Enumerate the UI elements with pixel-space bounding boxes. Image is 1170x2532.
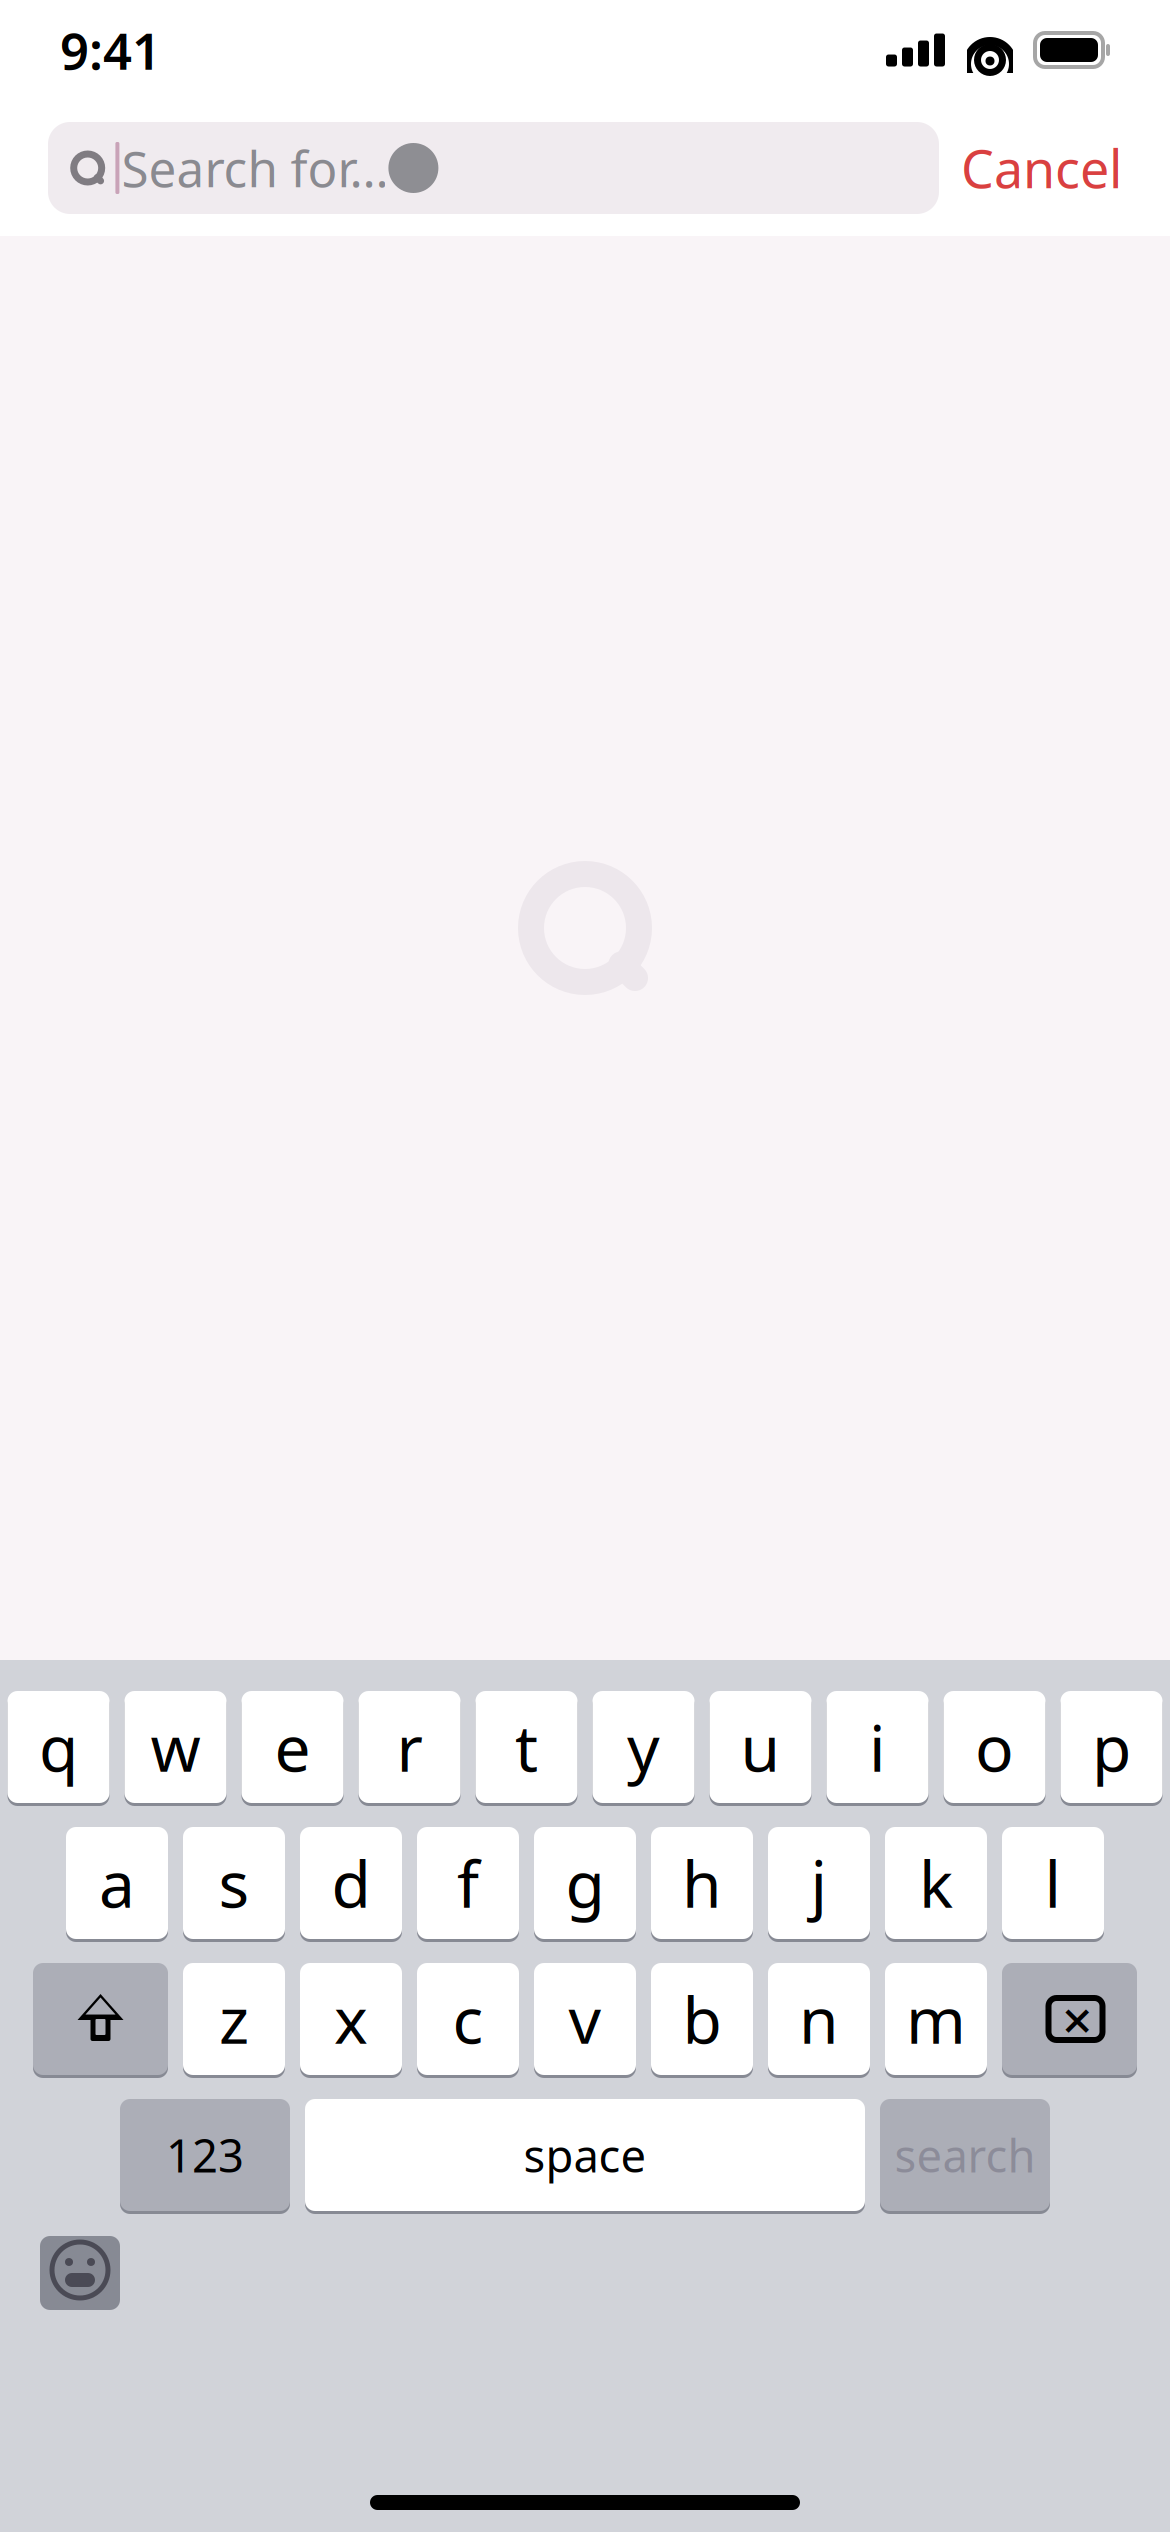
staticText: x [334,1976,368,2061]
staticText: m [906,1976,966,2061]
button[interactable]: space [305,2096,865,2214]
staticText: d [331,1840,370,1925]
staticText: s [218,1840,249,1925]
staticText: × [1062,1984,1093,2054]
staticText: f [457,1840,479,1925]
staticText: k [919,1840,953,1925]
button[interactable]: o [943,1688,1045,1806]
button[interactable]: search [880,2096,1050,2214]
button[interactable]: Delete [1002,1960,1137,2078]
button[interactable]: f [417,1824,519,1942]
button[interactable]: e [241,1688,343,1806]
button[interactable]: d [300,1824,402,1942]
button[interactable]: j [768,1824,870,1942]
staticText: q [39,1704,78,1789]
staticText: n [799,1976,839,2061]
button[interactable]: Search field [48,122,939,214]
button[interactable]: Shift [33,1960,168,2078]
button[interactable]: u [709,1688,811,1806]
button[interactable]: v [534,1960,636,2078]
staticText: r [396,1704,422,1789]
button[interactable]: z [183,1960,285,2078]
staticText: v [568,1976,601,2061]
button[interactable]: w [124,1688,226,1806]
staticText: w [150,1704,200,1789]
button[interactable]: r [358,1688,460,1806]
button[interactable]: 123 [120,2096,290,2214]
staticText: a [99,1840,135,1925]
button[interactable]: a [66,1824,168,1942]
staticText: search [894,2125,1035,2185]
button[interactable]: g [534,1824,636,1942]
staticText: p [1092,1704,1131,1789]
button[interactable]: Emoji [40,2230,120,2310]
button[interactable]: l [1002,1824,1104,1942]
staticText: b [682,1976,721,2061]
button[interactable]: h [651,1824,753,1942]
staticText: Search for... [121,135,388,201]
staticText: space [523,2125,646,2185]
staticText: h [682,1840,722,1925]
button[interactable]: n [768,1960,870,2078]
staticText: u [740,1704,780,1789]
button[interactable]: Cancel [939,122,1144,214]
staticText: j [810,1840,827,1925]
staticText: g [565,1840,604,1925]
staticText: z [219,1976,249,2061]
staticText: t [515,1704,538,1789]
staticText: e [274,1704,310,1789]
button[interactable]: s [183,1824,285,1942]
button[interactable]: t [475,1688,577,1806]
button[interactable]: y [592,1688,694,1806]
staticText: c [452,1976,483,2061]
button[interactable]: k [885,1824,987,1942]
button[interactable]: c [417,1960,519,2078]
staticText: Cancel [961,133,1122,203]
staticText: y [627,1704,660,1789]
staticText: 123 [166,2125,244,2185]
button[interactable]: m [885,1960,987,2078]
staticText: 9:41 [60,16,161,84]
staticText: i [869,1704,886,1789]
staticText: l [1044,1840,1061,1925]
button[interactable]: x [300,1960,402,2078]
staticText: o [975,1704,1014,1789]
button[interactable]: i [826,1688,928,1806]
button[interactable]: p [1060,1688,1162,1806]
button[interactable]: q [7,1688,109,1806]
button[interactable]: b [651,1960,753,2078]
